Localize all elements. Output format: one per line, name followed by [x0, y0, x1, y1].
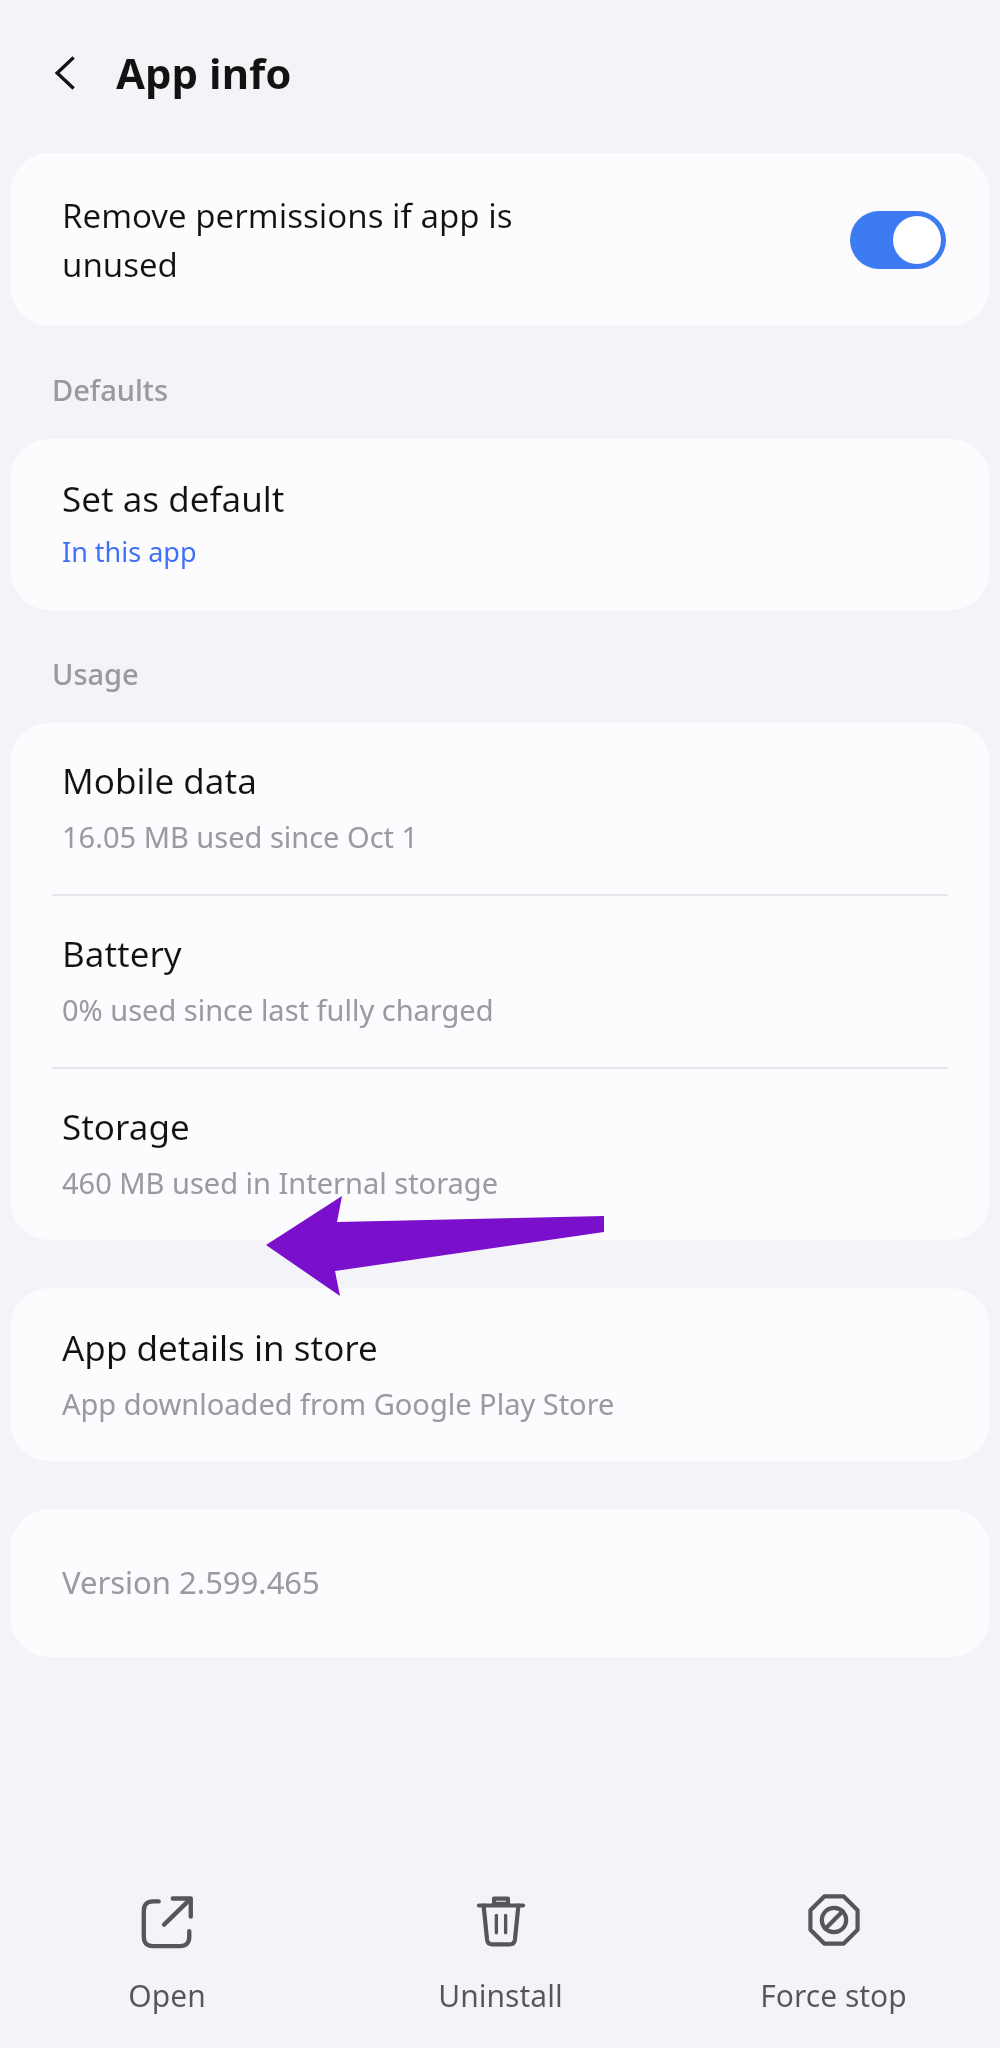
staticText: Set as default: [62, 475, 285, 523]
staticText: Version 2.599.465: [62, 1561, 320, 1603]
staticText: 460 MB used in Internal storage: [62, 1163, 499, 1202]
staticText: App info: [116, 44, 292, 101]
staticText: App details in store: [62, 1324, 378, 1372]
button[interactable]: Version 2.599.465: [10, 1509, 990, 1657]
staticText: Storage: [62, 1103, 190, 1151]
button[interactable]: Set as default: [10, 439, 990, 610]
button[interactable]: Mobile data: [10, 723, 990, 894]
staticText: Remove permissions if app is unused: [62, 193, 513, 286]
button[interactable]: Force stop: [667, 1858, 1000, 2048]
staticText: Usage: [52, 654, 139, 693]
staticText: In this app: [62, 533, 197, 570]
staticText: App downloaded from Google Play Store: [62, 1384, 615, 1423]
button[interactable]: Battery: [10, 896, 990, 1067]
staticText: Mobile data: [62, 757, 257, 805]
button[interactable]: Storage: [10, 1069, 990, 1240]
button[interactable]: Back: [38, 45, 94, 101]
staticText: Open: [128, 1975, 206, 2016]
staticText: Battery: [62, 930, 182, 978]
staticText: Defaults: [52, 370, 169, 409]
button[interactable]: Remove permissions if app is unused: [10, 153, 990, 326]
staticText: 0% used since last fully charged: [62, 990, 494, 1029]
staticText: Uninstall: [438, 1975, 563, 2016]
button[interactable]: Remove permissions toggle: [850, 211, 946, 269]
staticText: 16.05 MB used since Oct 1: [62, 817, 419, 856]
button[interactable]: Open: [0, 1858, 334, 2048]
button[interactable]: Uninstall: [334, 1858, 667, 2048]
button[interactable]: App details in store: [10, 1288, 990, 1461]
staticText: Force stop: [760, 1975, 907, 2016]
